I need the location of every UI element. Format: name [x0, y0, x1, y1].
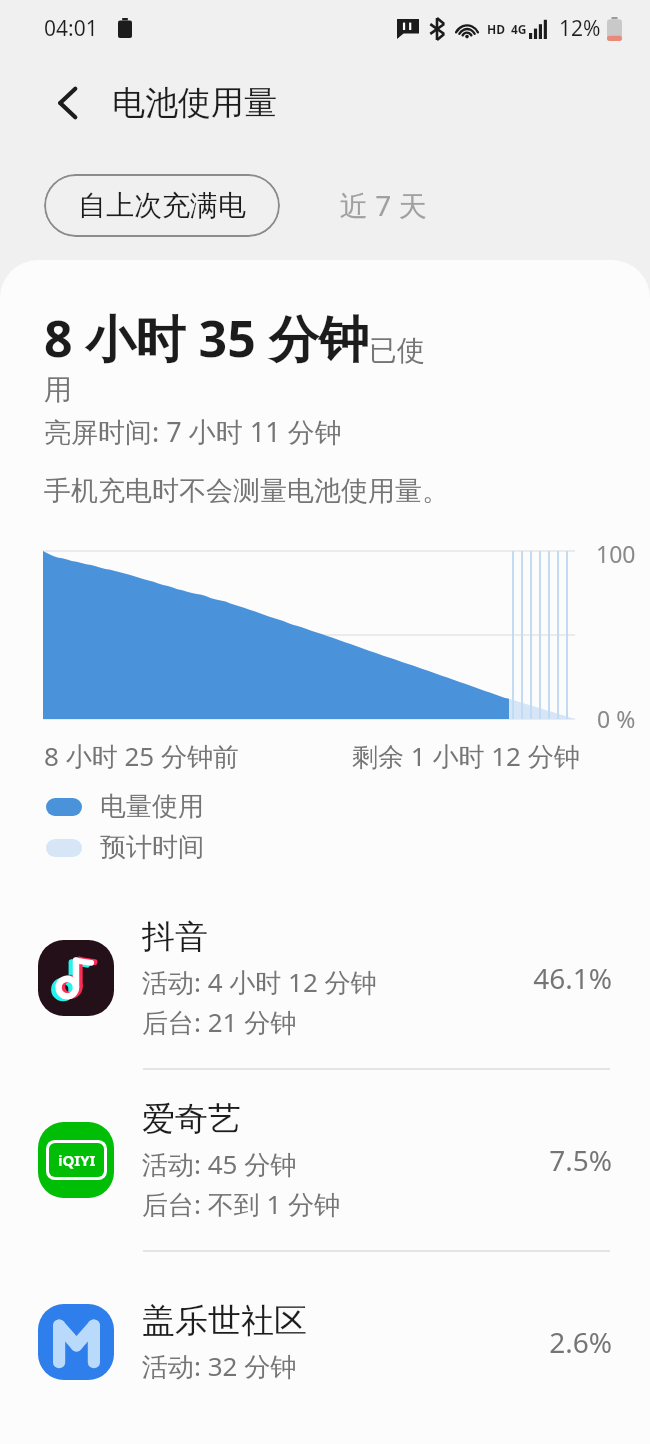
staticText: 用: [44, 372, 72, 407]
staticText: 爱奇艺: [142, 1098, 241, 1140]
staticText: HD: [487, 21, 505, 37]
staticText: 04:01: [44, 14, 98, 43]
button[interactable]: 抖音: [0, 888, 650, 1068]
staticText: 后台: 21 分钟: [142, 1004, 297, 1040]
staticText: 手机充电时不会测量电池使用量。: [44, 474, 449, 508]
staticText: 已使: [369, 333, 425, 368]
button[interactable]: 盖乐世社区: [0, 1252, 650, 1432]
staticText: 8 小时 25 分钟前: [44, 738, 239, 774]
staticText: 活动: 32 分钟: [142, 1348, 297, 1384]
staticText: 后台: 不到 1 分钟: [142, 1186, 341, 1222]
staticText: 剩余 1 小时 12 分钟: [352, 738, 580, 774]
staticText: iQIYI: [58, 1150, 96, 1170]
button[interactable]: 近 7 天: [320, 172, 447, 238]
staticText: 电量使用: [100, 790, 204, 823]
staticText: 4G: [511, 21, 527, 37]
staticText: 盖乐世社区: [142, 1300, 307, 1342]
staticText: 0 %: [597, 703, 636, 734]
button[interactable]: Back: [40, 75, 96, 131]
staticText: 8 小时 35 分钟: [44, 304, 369, 372]
staticText: 抖音: [142, 916, 208, 958]
button[interactable]: iQIYI: [0, 1070, 650, 1250]
staticText: 2.6%: [549, 1323, 612, 1361]
staticText: 7.5%: [549, 1141, 612, 1179]
staticText: 自上次充满电: [78, 188, 246, 223]
staticText: 活动: 45 分钟: [142, 1146, 297, 1182]
staticText: 12%: [559, 14, 601, 43]
button[interactable]: 自上次充满电: [44, 174, 280, 237]
staticText: 亮屏时间: 7 小时 11 分钟: [44, 413, 342, 450]
staticText: 46.1%: [533, 959, 612, 997]
staticText: 100: [596, 538, 636, 569]
staticText: 电池使用量: [112, 82, 277, 124]
staticText: 预计时间: [100, 831, 204, 864]
staticText: 活动: 4 小时 12 分钟: [142, 964, 377, 1000]
staticText: 近 7 天: [340, 186, 427, 224]
